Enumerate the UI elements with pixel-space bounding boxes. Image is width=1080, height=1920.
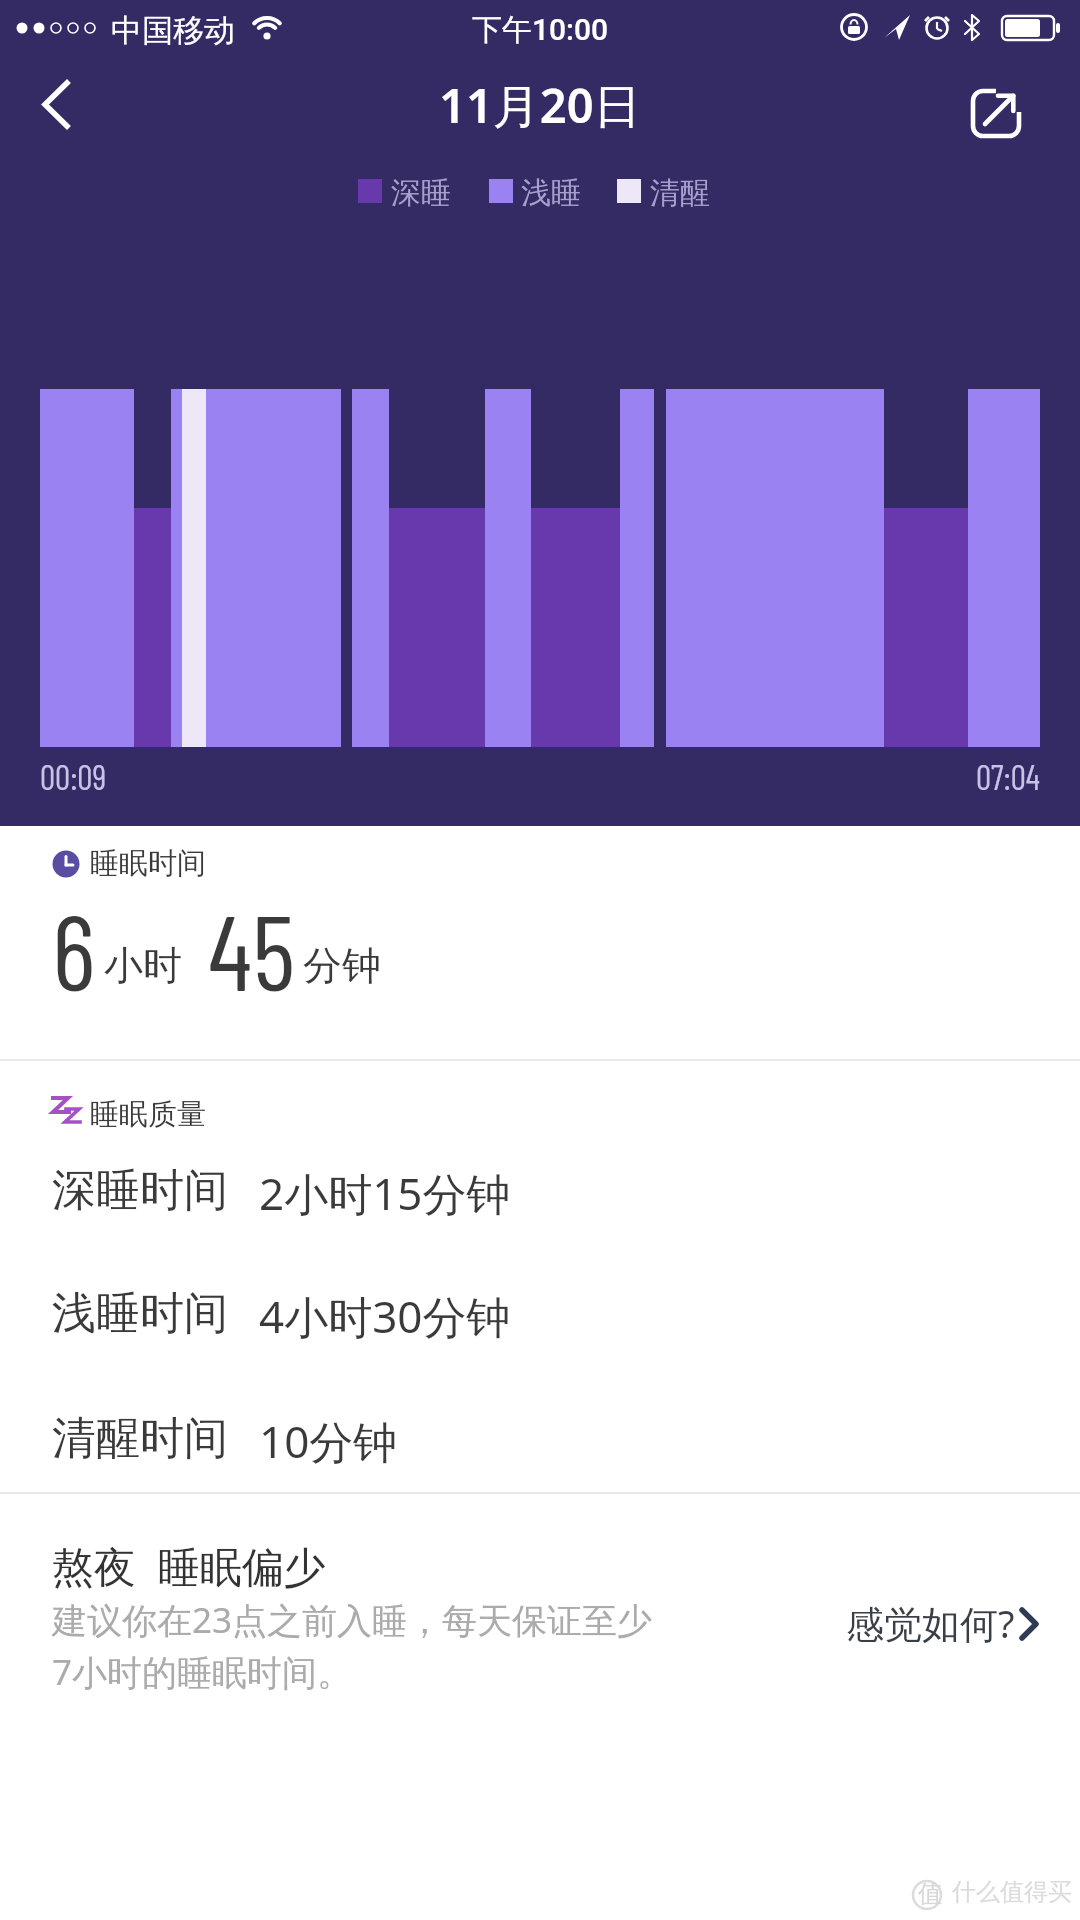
staticText: 建议你在23点之前入睡，每天保证至少 7小时的睡眠时间。 bbox=[52, 1596, 653, 1696]
staticText: 2小时15分钟 bbox=[259, 1163, 511, 1223]
staticText: 清醒时间 bbox=[52, 1411, 228, 1466]
staticText: 07:04 bbox=[976, 756, 1040, 797]
staticText: 深睡时间 bbox=[52, 1163, 228, 1218]
staticText: 00:09 bbox=[40, 756, 107, 797]
staticText: 熬夜 睡眠偏少 bbox=[52, 1537, 326, 1594]
staticText: 浅睡时间 bbox=[52, 1286, 228, 1341]
staticText: 清醒 bbox=[650, 174, 710, 212]
staticText: 中国移动 bbox=[111, 11, 235, 50]
staticText: 深睡 bbox=[391, 174, 451, 212]
button[interactable]: 感觉如何? bbox=[846, 1597, 1042, 1649]
staticText: 分钟 bbox=[303, 941, 381, 990]
staticText: 4小时30分钟 bbox=[259, 1286, 511, 1346]
staticText: 45 bbox=[208, 885, 296, 1012]
button[interactable] bbox=[20, 70, 90, 140]
staticText: 小时 bbox=[104, 941, 182, 990]
staticText: 11月20日 bbox=[439, 73, 641, 137]
staticText: 睡眠质量 bbox=[90, 1096, 206, 1133]
staticText: 浅睡 bbox=[521, 174, 581, 212]
staticText: 睡眠时间 bbox=[90, 845, 206, 882]
staticText: 值 bbox=[918, 1879, 942, 1909]
staticText: 下午10:00 bbox=[472, 11, 609, 49]
staticText: 6 bbox=[52, 885, 96, 1012]
staticText: 感觉如何? bbox=[846, 1597, 1015, 1649]
staticText: 什么值得买 bbox=[952, 1877, 1072, 1907]
staticText: 10分钟 bbox=[259, 1411, 398, 1471]
button[interactable] bbox=[960, 78, 1030, 148]
